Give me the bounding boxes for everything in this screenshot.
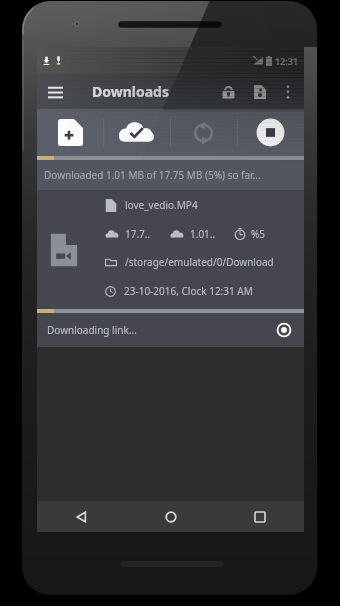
button[interactable]: love_vedio.MP4 — [37, 190, 304, 309]
staticText: 12:31 — [275, 55, 299, 67]
staticText: love_vedio.MP4 — [125, 198, 198, 212]
button[interactable]: Recent apps — [215, 501, 304, 532]
staticText: Downloading link... — [47, 323, 137, 337]
button[interactable]: Cancel download — [269, 315, 299, 345]
staticText: 23-10-2016, Clock 12:31 AM — [124, 284, 253, 298]
staticText: Downloads — [92, 82, 169, 101]
button[interactable]: Add new download — [37, 109, 103, 156]
button[interactable]: Home — [126, 501, 215, 532]
button[interactable]: More options — [276, 74, 300, 109]
staticText: %5 — [251, 227, 266, 241]
button[interactable]: Stop all — [237, 109, 304, 156]
button[interactable]: Navigation drawer — [37, 74, 73, 109]
button[interactable]: Completed downloads — [103, 109, 170, 156]
staticText: Downloaded 1.01 MB of 17.75 MB (5%) so f… — [44, 168, 261, 182]
button[interactable]: Saved files — [244, 74, 276, 109]
button[interactable]: Downloading link... — [37, 313, 304, 347]
button[interactable]: Secure downloads — [212, 74, 244, 109]
staticText: /storage/emulated/0/Download — [125, 255, 274, 269]
button[interactable]: Downloaded 1.01 MB of 17.75 MB (5%) so f… — [37, 160, 304, 190]
button[interactable]: Resume all — [170, 109, 237, 156]
staticText: 1.01.. — [190, 227, 216, 241]
button[interactable]: Back — [37, 501, 126, 532]
staticText: 17.7.. — [125, 227, 151, 241]
